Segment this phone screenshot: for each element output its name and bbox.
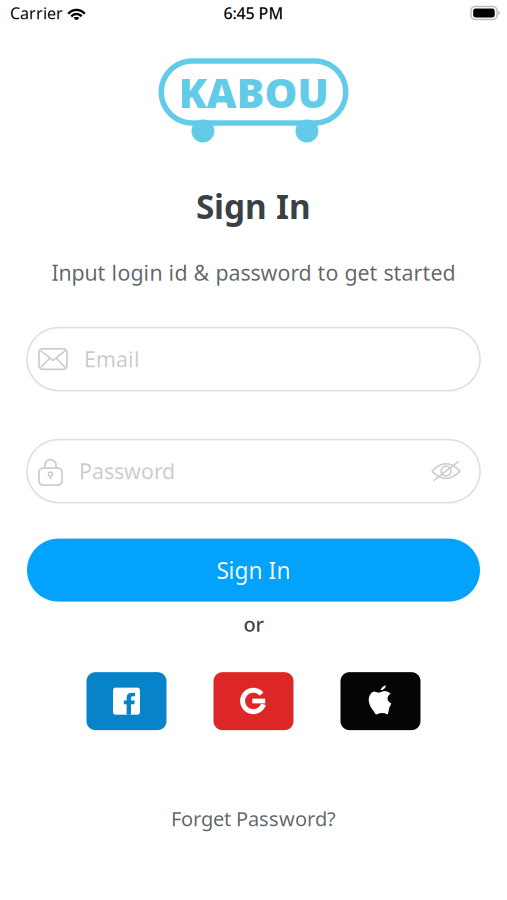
staticText: KABOU xyxy=(178,65,328,119)
staticText: Sign In xyxy=(196,184,311,228)
button[interactable]: Sign in with Google xyxy=(213,672,293,730)
staticText: Forget Password? xyxy=(171,805,336,832)
staticText: Input login id & password to get started xyxy=(51,258,455,287)
staticText: Email xyxy=(84,345,140,373)
staticText: Carrier xyxy=(10,2,63,24)
staticText: Password xyxy=(79,457,175,485)
button[interactable]: Sign in with Apple xyxy=(340,672,420,730)
staticText: or xyxy=(243,611,263,637)
button[interactable]: Forget Password? xyxy=(171,805,336,832)
button[interactable]: Sign In xyxy=(27,539,480,602)
staticText: Sign In xyxy=(216,555,290,585)
button[interactable]: Sign in with Facebook xyxy=(86,672,166,730)
staticText: 6:45 PM xyxy=(223,2,283,24)
